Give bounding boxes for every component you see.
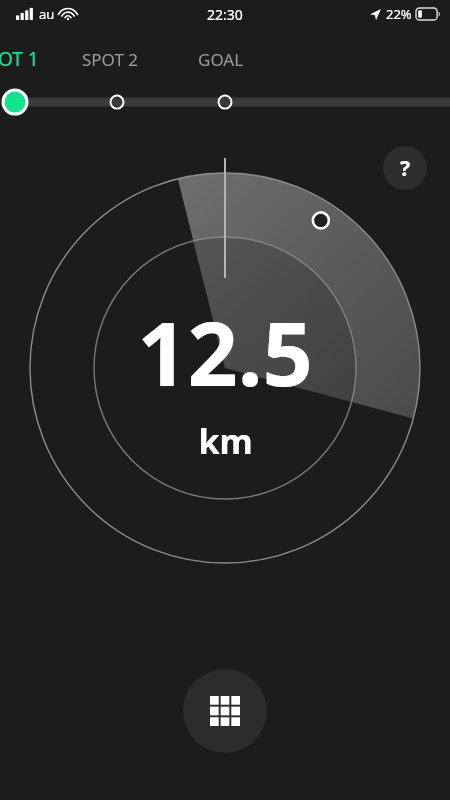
staticText: au bbox=[39, 5, 55, 23]
staticText: ? bbox=[400, 154, 411, 183]
button[interactable]: Apps bbox=[183, 669, 267, 753]
staticText: 22% bbox=[386, 5, 412, 23]
button[interactable]: GOAL bbox=[194, 42, 248, 77]
staticText: km bbox=[198, 418, 253, 464]
staticText: SPOT 1 bbox=[0, 46, 39, 72]
staticText: SPOT 2 bbox=[82, 48, 138, 71]
staticText: 12.5 bbox=[137, 292, 313, 412]
button[interactable]: SPOT 2 bbox=[78, 42, 142, 77]
button[interactable]: SPOT 1 bbox=[0, 40, 43, 78]
button[interactable]: Help bbox=[383, 146, 427, 190]
staticText: GOAL bbox=[198, 48, 244, 71]
staticText: 22:30 bbox=[207, 5, 243, 24]
